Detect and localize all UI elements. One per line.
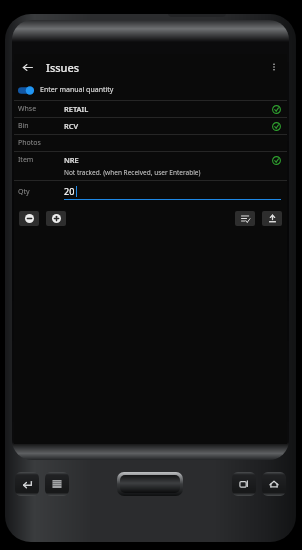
button[interactable]: Scan	[117, 472, 183, 496]
button[interactable]: Review list	[235, 211, 255, 226]
button[interactable]: Qty	[14, 181, 287, 203]
staticText: RCV	[64, 121, 265, 131]
button[interactable]: Decrease	[19, 211, 39, 226]
button[interactable]: Back	[14, 54, 40, 80]
button[interactable]: Photos	[14, 135, 287, 151]
staticText: Issues	[46, 60, 80, 75]
staticText: Photos	[18, 138, 64, 148]
staticText: Qty	[18, 187, 64, 197]
button[interactable]: Item	[14, 152, 287, 180]
button[interactable]: Submit	[262, 211, 282, 226]
staticText: Whse	[18, 104, 64, 114]
staticText: Item	[18, 155, 64, 165]
staticText: Enter manual quantity	[40, 85, 114, 95]
button[interactable]: Bin	[14, 118, 287, 134]
button[interactable]: Recents	[232, 472, 256, 496]
button[interactable]: Increase	[46, 211, 66, 226]
staticText: NRE	[64, 155, 265, 165]
button[interactable]: Whse	[14, 101, 287, 117]
button[interactable]: Enter manual quantity	[14, 80, 287, 100]
staticText: RETAIL	[64, 104, 265, 114]
staticText: 20	[64, 185, 75, 197]
button[interactable]: More options	[261, 54, 287, 80]
button[interactable]: Home	[262, 472, 286, 496]
staticText: Not tracked. (when Received, user Entera…	[64, 168, 201, 177]
button[interactable]: Back	[15, 472, 39, 496]
staticText: Bin	[18, 121, 64, 131]
button[interactable]: Menu	[45, 472, 69, 496]
